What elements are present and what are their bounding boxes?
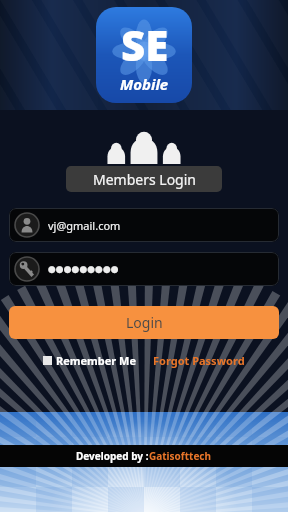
staticText: Mobile xyxy=(120,74,169,94)
staticText: Remember Me xyxy=(56,353,137,368)
button[interactable]: Remember Me xyxy=(43,353,137,368)
button[interactable]: SE Mobile logo xyxy=(96,7,192,103)
staticText: ●●●●●●●●● xyxy=(48,264,119,274)
staticText: SE xyxy=(121,16,169,73)
staticText: Gatisofttech xyxy=(149,449,212,463)
button[interactable]: Forgot Password xyxy=(153,353,245,368)
button[interactable]: vj@gmail.com xyxy=(9,208,279,242)
button[interactable]: Members Login xyxy=(66,166,222,192)
staticText: vj@gmail.com xyxy=(48,218,121,233)
button[interactable]: ●●●●●●●●● xyxy=(9,252,279,286)
staticText: Login xyxy=(126,313,163,332)
staticText: Forgot Password xyxy=(153,353,245,368)
button[interactable]: Login xyxy=(9,306,279,339)
staticText: Developed by : xyxy=(76,449,149,463)
staticText: Members Login xyxy=(93,170,196,189)
